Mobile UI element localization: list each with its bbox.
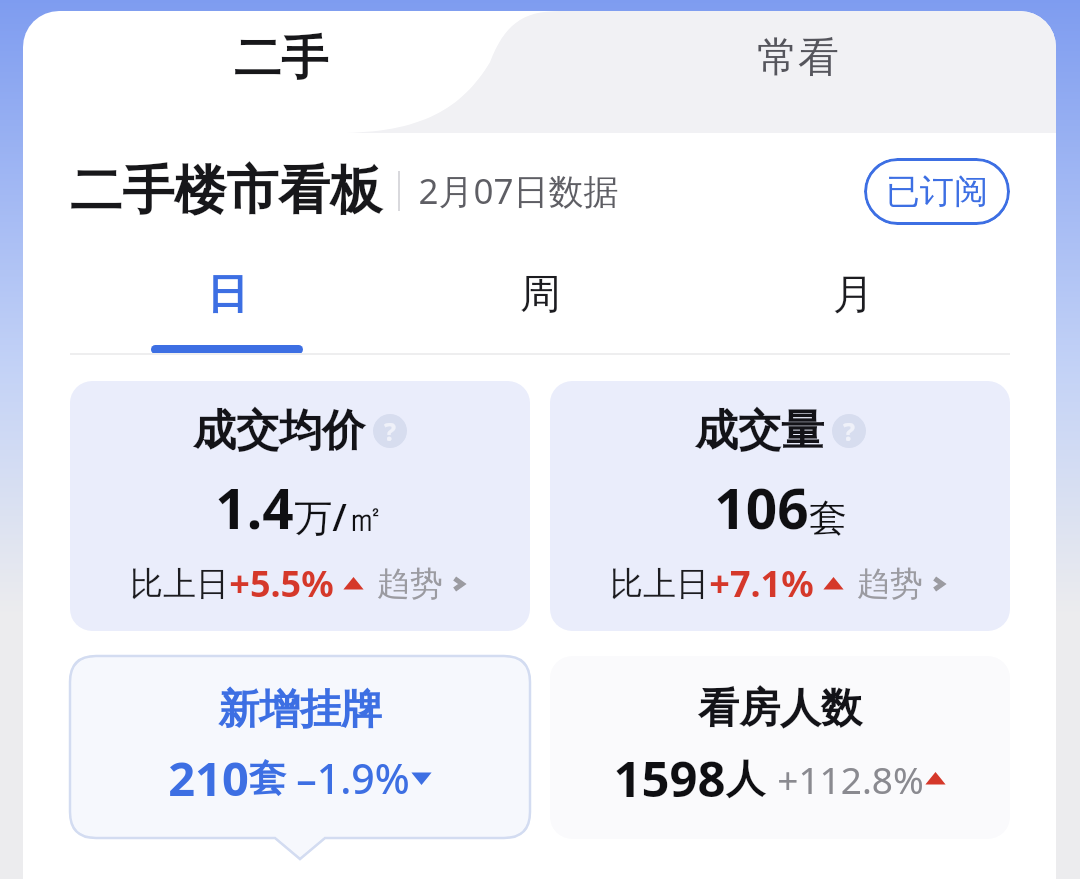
button[interactable]: 已订阅 (864, 158, 1010, 225)
staticText: 看房人数 (698, 683, 862, 735)
staticText: +112.8% (777, 754, 924, 804)
staticText: 2月07日数据 (418, 167, 619, 215)
staticText: 趋势 (857, 563, 923, 605)
button[interactable]: 常看 (539, 11, 1056, 133)
staticText: 周 (520, 269, 561, 321)
button[interactable]: 成交量 (550, 381, 1010, 631)
staticText: 成交均价 (193, 404, 365, 458)
staticText: ? (843, 414, 855, 448)
staticText: 新增挂牌 (218, 684, 382, 736)
button[interactable]: 说明 (373, 414, 407, 448)
staticText: 套 (249, 755, 286, 802)
staticText: 1598 (613, 745, 726, 812)
staticText: 日 (207, 269, 248, 321)
staticText: 比上日 (130, 563, 229, 605)
staticText: 二手 (234, 29, 328, 88)
staticText: 常看 (757, 32, 839, 84)
staticText: 比上日 (610, 563, 709, 605)
button[interactable]: 周 (384, 249, 697, 355)
staticText: 月 (833, 269, 874, 321)
staticText: 210 (168, 746, 249, 810)
button[interactable]: 说明 (832, 414, 866, 448)
staticText: 1.4 (215, 470, 294, 545)
staticText: –1.9% (296, 750, 410, 806)
staticText: +7.1% (709, 559, 814, 608)
staticText: 二手楼市看板 (70, 158, 382, 224)
staticText: 人 (726, 754, 765, 803)
staticText: 106 (714, 470, 809, 545)
staticText: ? (384, 414, 396, 448)
button[interactable]: 二手 (23, 11, 539, 133)
staticText: 已订阅 (886, 170, 988, 213)
staticText: 套 (809, 494, 847, 542)
button[interactable]: 月 (697, 249, 1010, 355)
button[interactable]: 成交均价 (70, 381, 530, 631)
staticText: 万/㎡ (294, 490, 385, 542)
staticText: +5.5% (229, 559, 334, 608)
staticText: 趋势 (377, 563, 443, 605)
staticText: 成交量 (695, 404, 824, 458)
button[interactable]: 看房人数 (550, 656, 1010, 839)
button[interactable]: 新增挂牌 (70, 656, 530, 859)
button[interactable]: 日 (70, 249, 384, 355)
